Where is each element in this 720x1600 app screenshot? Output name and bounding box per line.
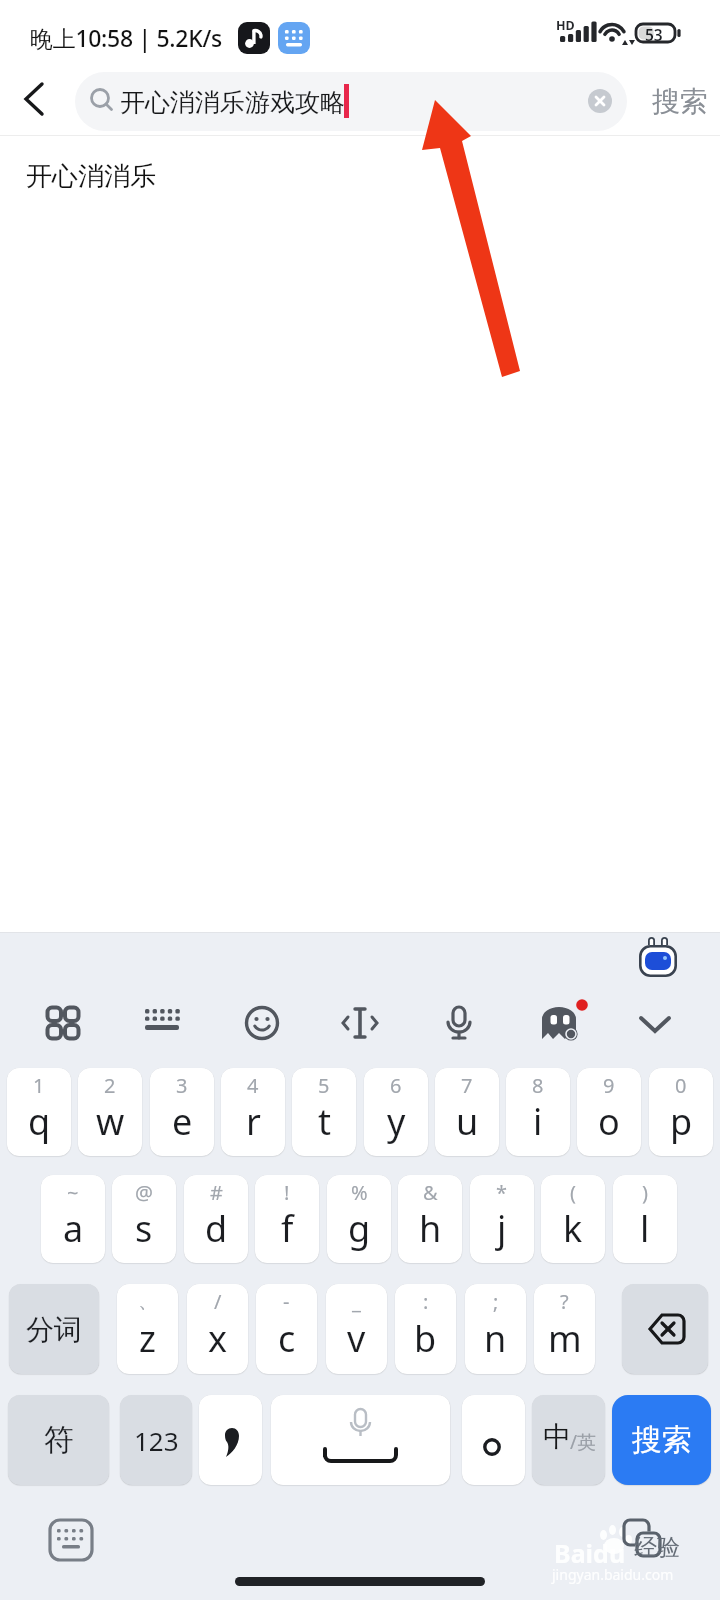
staticText: Baidu bbox=[554, 1536, 626, 1570]
button[interactable]: ? bbox=[534, 1284, 595, 1374]
staticText: 2 bbox=[104, 1072, 116, 1099]
staticText: t bbox=[318, 1097, 331, 1146]
button[interactable]: 7 bbox=[435, 1068, 499, 1156]
staticText: 3 bbox=[176, 1072, 188, 1099]
staticText: jingyan.baidu.com bbox=[552, 1565, 674, 1584]
staticText: 1 bbox=[33, 1072, 45, 1099]
button[interactable] bbox=[30, 998, 96, 1048]
staticText: k bbox=[563, 1204, 583, 1253]
staticText: y bbox=[387, 1097, 406, 1146]
button[interactable]: # bbox=[184, 1175, 248, 1263]
button[interactable]: 0 bbox=[649, 1068, 713, 1156]
staticText: e bbox=[172, 1097, 193, 1146]
button[interactable]: ; bbox=[465, 1284, 526, 1374]
staticText: n bbox=[484, 1314, 507, 1363]
staticText: f bbox=[281, 1204, 294, 1253]
button[interactable]: 8 bbox=[506, 1068, 570, 1156]
button[interactable]: 搜索 bbox=[643, 80, 713, 120]
staticText: 5 bbox=[318, 1072, 330, 1099]
button[interactable]: % bbox=[327, 1175, 391, 1263]
button[interactable]: 6 bbox=[364, 1068, 428, 1156]
staticText: * bbox=[496, 1179, 508, 1206]
staticText: o bbox=[598, 1097, 620, 1146]
staticText: w bbox=[96, 1097, 125, 1146]
button[interactable] bbox=[327, 998, 393, 1048]
button[interactable]: * bbox=[470, 1175, 534, 1263]
staticText: b bbox=[414, 1314, 437, 1363]
staticText: 53 bbox=[645, 24, 663, 45]
staticText: s bbox=[135, 1204, 153, 1253]
button[interactable] bbox=[588, 89, 612, 113]
staticText: p bbox=[670, 1097, 693, 1146]
staticText: 晚上10:58 | 5.2K/s bbox=[30, 22, 222, 53]
staticText: a bbox=[63, 1204, 84, 1253]
button[interactable]: ~ bbox=[41, 1175, 105, 1263]
staticText: 分词 bbox=[26, 1312, 82, 1347]
button[interactable]: ) bbox=[613, 1175, 677, 1263]
staticText: & bbox=[423, 1179, 438, 1206]
button[interactable]: 符 bbox=[8, 1395, 109, 1485]
staticText: : bbox=[423, 1288, 429, 1315]
staticText: HD bbox=[556, 17, 575, 34]
staticText: z bbox=[139, 1314, 156, 1363]
button[interactable]: 搜索 bbox=[612, 1395, 711, 1485]
staticText: @ bbox=[135, 1179, 153, 1206]
staticText: ~ bbox=[67, 1179, 79, 1206]
staticText: - bbox=[283, 1288, 290, 1315]
button[interactable]: : bbox=[395, 1284, 456, 1374]
staticText: 7 bbox=[461, 1072, 473, 1099]
staticText: # bbox=[210, 1179, 223, 1206]
button[interactable]: 9 bbox=[577, 1068, 641, 1156]
staticText: 4 bbox=[247, 1072, 259, 1099]
staticText: /英 bbox=[570, 1429, 597, 1455]
button[interactable]: 2 bbox=[78, 1068, 142, 1156]
button[interactable] bbox=[199, 1395, 262, 1485]
button[interactable]: 4 bbox=[221, 1068, 285, 1156]
staticText: h bbox=[419, 1204, 442, 1253]
button[interactable]: 开心消消乐游戏攻略 bbox=[75, 72, 627, 131]
staticText: % bbox=[351, 1179, 368, 1206]
button[interactable] bbox=[10, 75, 58, 123]
staticText: v bbox=[347, 1314, 366, 1363]
button[interactable] bbox=[525, 998, 591, 1048]
button[interactable]: 中 bbox=[532, 1395, 605, 1485]
button[interactable] bbox=[639, 937, 677, 977]
button[interactable] bbox=[271, 1395, 450, 1485]
staticText: 中 bbox=[543, 1419, 571, 1454]
staticText: ! bbox=[284, 1179, 290, 1206]
staticText: ) bbox=[642, 1179, 648, 1206]
button[interactable] bbox=[129, 998, 195, 1048]
staticText: ; bbox=[493, 1288, 499, 1315]
staticText: r bbox=[246, 1097, 261, 1146]
staticText: x bbox=[208, 1314, 228, 1363]
button[interactable]: 5 bbox=[292, 1068, 356, 1156]
button[interactable]: & bbox=[398, 1175, 462, 1263]
button[interactable] bbox=[48, 1518, 96, 1564]
button[interactable] bbox=[622, 1284, 708, 1374]
button[interactable]: ( bbox=[541, 1175, 605, 1263]
button[interactable] bbox=[462, 1395, 525, 1485]
button[interactable]: 、 bbox=[117, 1284, 178, 1374]
button[interactable]: / bbox=[187, 1284, 248, 1374]
button[interactable]: 123 bbox=[120, 1395, 192, 1485]
staticText: 0 bbox=[675, 1072, 687, 1099]
staticText: 搜索 bbox=[632, 1421, 692, 1459]
button[interactable]: - bbox=[256, 1284, 317, 1374]
staticText: / bbox=[214, 1288, 222, 1315]
button[interactable]: _ bbox=[326, 1284, 387, 1374]
staticText: _ bbox=[352, 1288, 361, 1315]
button[interactable]: ! bbox=[255, 1175, 319, 1263]
button[interactable]: 3 bbox=[150, 1068, 214, 1156]
staticText: 开心消消乐 bbox=[26, 160, 156, 193]
button[interactable]: @ bbox=[112, 1175, 176, 1263]
staticText: 、 bbox=[138, 1288, 158, 1313]
button[interactable] bbox=[426, 998, 492, 1048]
button[interactable]: 1 bbox=[7, 1068, 71, 1156]
button[interactable]: 分词 bbox=[9, 1284, 99, 1374]
staticText: 6 bbox=[390, 1072, 402, 1099]
button[interactable] bbox=[622, 998, 688, 1048]
button[interactable]: 开心消消乐 bbox=[0, 146, 720, 202]
staticText: 搜索 bbox=[652, 84, 708, 119]
button[interactable] bbox=[229, 998, 295, 1048]
staticText: g bbox=[348, 1204, 371, 1253]
